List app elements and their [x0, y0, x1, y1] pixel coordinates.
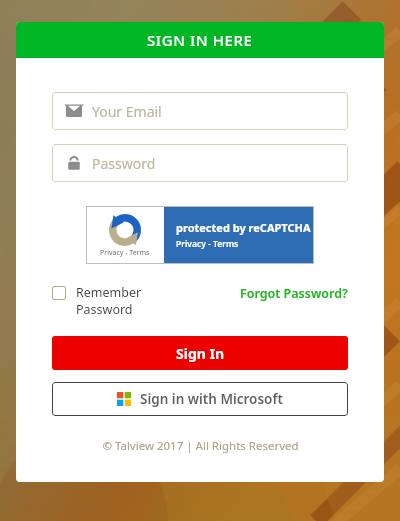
button[interactable]: Remember [52, 284, 142, 318]
staticText: Sign in with Microsoft [140, 390, 283, 408]
button[interactable]: Sign in with Microsoft [52, 382, 348, 416]
staticText: Privacy - Terms [100, 248, 150, 258]
button[interactable]: Your Email [52, 92, 348, 130]
staticText: protected by reCAPTCHA [176, 220, 311, 235]
staticText: Password [76, 301, 133, 318]
button[interactable]: Sign In [52, 336, 348, 370]
button[interactable]: Forgot Password? [240, 285, 348, 302]
staticText: © Talview 2017 | All Rights Reserved [102, 438, 299, 454]
staticText: Privacy - Terms [176, 238, 239, 250]
staticText: Password [92, 154, 156, 173]
staticText: Remember [76, 284, 142, 301]
button[interactable]: Privacy - Terms [86, 206, 314, 264]
staticText: Your Email [92, 102, 162, 121]
staticText: SIGN IN HERE [147, 30, 253, 50]
staticText: Sign In [176, 344, 225, 363]
staticText: Forgot Password? [240, 285, 348, 302]
button[interactable]: Password [52, 144, 348, 182]
